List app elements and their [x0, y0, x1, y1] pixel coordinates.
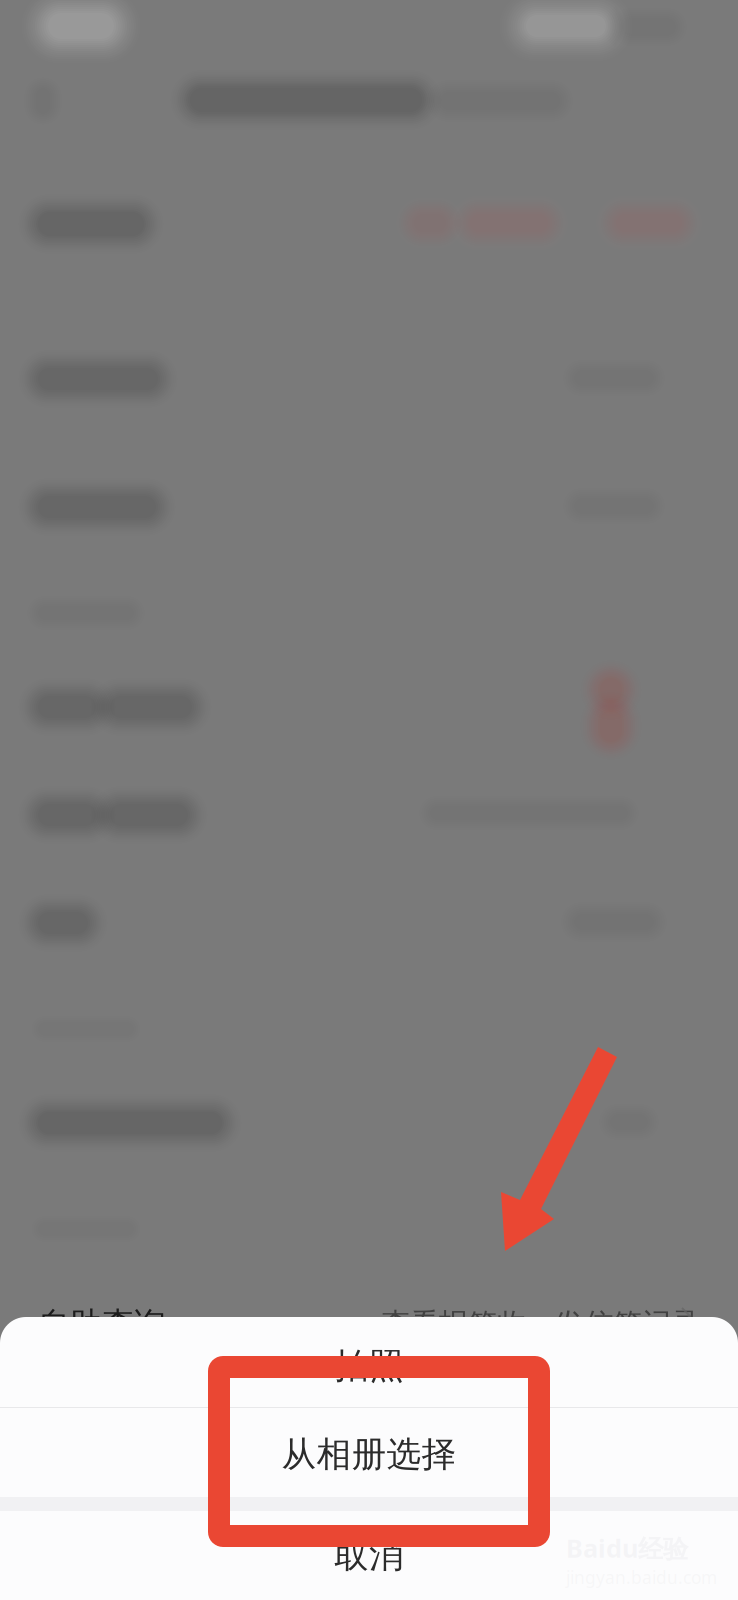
staticText: 查看报箱收、发信箱记录 — [381, 1306, 700, 1342]
staticText: 取消 — [334, 1534, 404, 1577]
button[interactable]: 取消 — [0, 1511, 738, 1600]
button[interactable]: 自助查询 — [0, 1276, 738, 1372]
button[interactable]: 从相册选择 — [0, 1408, 738, 1497]
button[interactable]: 拍照 — [0, 1317, 738, 1407]
staticText: Baidu经验 — [566, 1531, 688, 1565]
staticText: 拍照 — [334, 1345, 404, 1387]
staticText: 从相册选择 — [281, 1433, 456, 1476]
staticText: 自助查询 — [38, 1304, 166, 1344]
